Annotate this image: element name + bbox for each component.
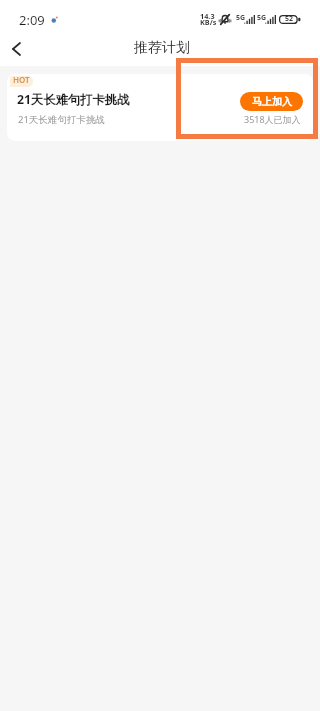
staticText: 2:09: [19, 11, 45, 29]
staticText: 3518人已加入: [244, 113, 301, 125]
button[interactable]: 马上加入: [240, 92, 303, 111]
staticText: KB/s: [200, 17, 217, 27]
staticText: 21天长难句打卡挑战: [17, 91, 130, 108]
staticText: 5G: [257, 13, 267, 23]
staticText: HOT: [13, 76, 30, 85]
button[interactable]: HOT: [7, 74, 313, 141]
staticText: 21天长难句打卡挑战: [18, 113, 105, 126]
staticText: 马上加入: [252, 95, 292, 108]
staticText: 推荐计划: [134, 39, 190, 57]
staticText: 52: [285, 14, 294, 24]
button[interactable]: Back: [2, 35, 30, 63]
staticText: 14.3: [200, 11, 215, 21]
staticText: 5G: [236, 13, 246, 23]
